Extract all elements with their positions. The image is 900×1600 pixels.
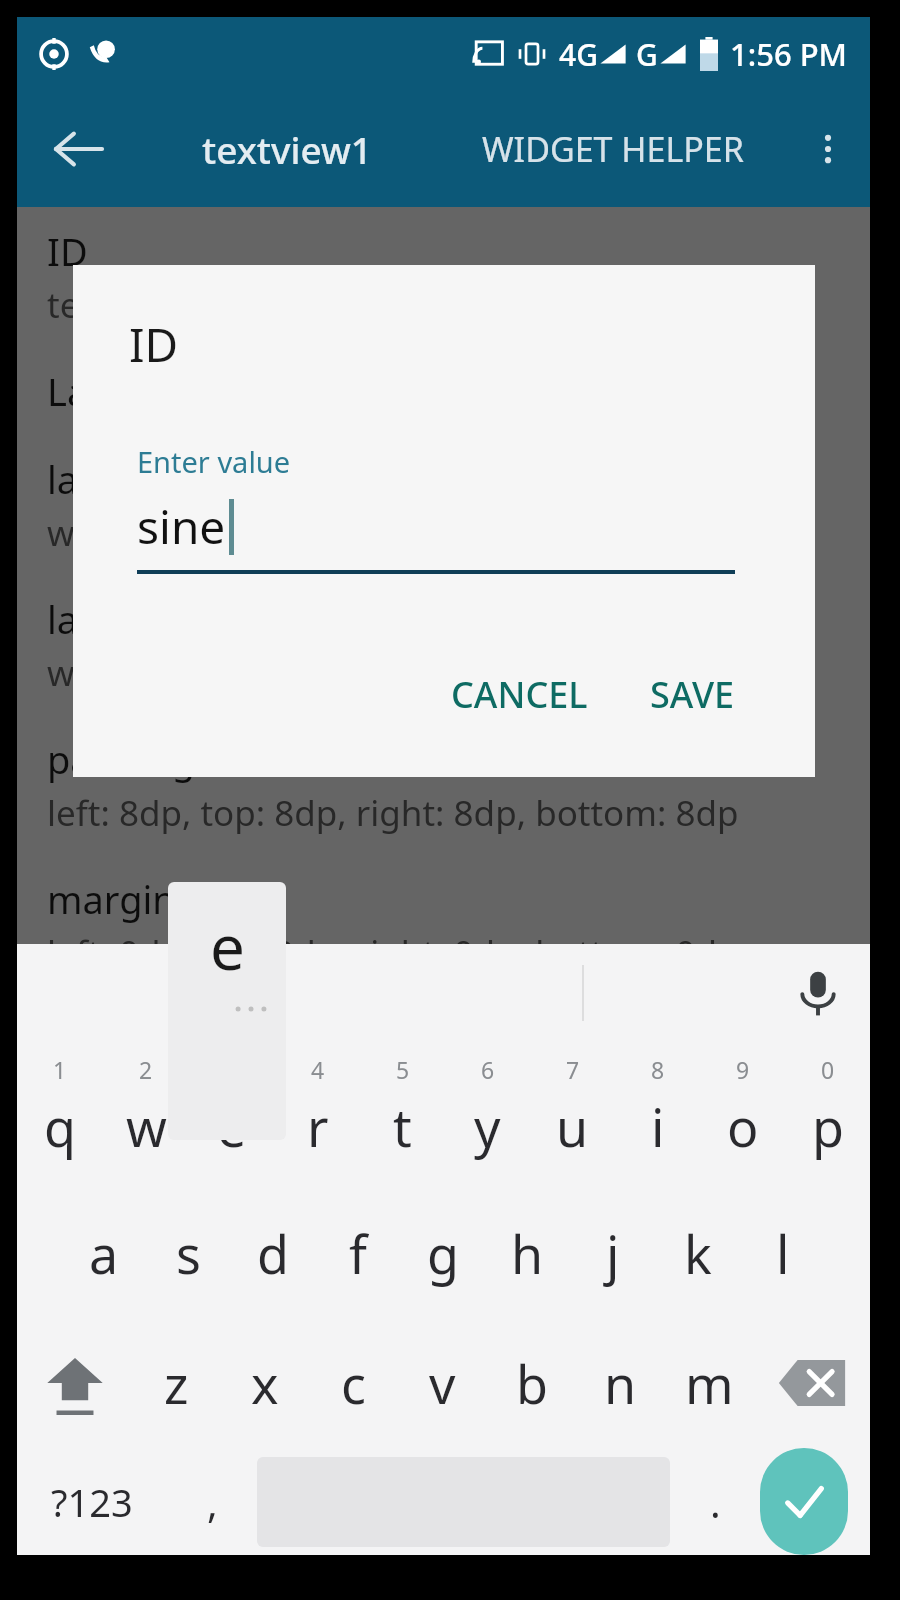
staticText: margin [47,873,176,925]
button[interactable]: f [315,1188,400,1318]
staticText: o [727,1091,759,1162]
staticText: s [176,1218,201,1289]
staticText: l [776,1218,790,1289]
button[interactable]: a [62,1188,146,1318]
button[interactable]: m [665,1318,754,1448]
staticText: SAVE [650,670,735,719]
staticText: k [684,1218,712,1289]
button[interactable]: Shift [17,1318,132,1448]
staticText: z [164,1348,189,1419]
staticText: WIDGET HELPER [482,126,744,172]
staticText: sine [137,495,226,558]
staticText: x [251,1348,279,1419]
staticText: r [307,1091,329,1162]
button[interactable]: d [230,1188,315,1318]
button[interactable]: z [132,1318,220,1448]
staticText: g [427,1218,459,1289]
button[interactable]: 5 [360,1042,445,1188]
button[interactable]: CANCEL [435,660,604,729]
staticText: y [474,1091,501,1162]
button[interactable]: Enter [760,1448,848,1555]
staticText: a [89,1218,119,1289]
staticText: left: 0dp, top: 0dp, right: 0dp, bottom:… [47,929,739,944]
staticText: j [606,1218,620,1289]
staticText: textview1 [202,124,372,174]
staticText: left: 8dp, top: 8dp, right: 8dp, bottom:… [47,789,739,837]
staticText: ID [47,225,88,277]
button[interactable]: x [220,1318,309,1448]
staticText: 4G [559,34,598,75]
button[interactable]: j [570,1188,655,1318]
staticText: 2 [139,1054,153,1085]
staticText: 0 [821,1054,835,1085]
staticText: q [44,1091,76,1162]
button[interactable]: b [487,1318,576,1448]
button[interactable]: . [670,1448,760,1555]
button[interactable]: 7 [530,1042,615,1188]
button[interactable]: g [400,1188,485,1318]
staticText: b [516,1348,548,1419]
staticText: w [126,1091,167,1162]
staticText: , [207,1475,218,1529]
staticText: Enter value [137,442,291,481]
staticText: f [349,1218,367,1289]
button[interactable]: 9 [700,1042,785,1188]
staticText: 4 [311,1054,325,1085]
button[interactable]: c [309,1318,398,1448]
button[interactable]: Back [47,117,111,181]
staticText: t [393,1091,412,1162]
staticText: p [812,1091,844,1162]
button[interactable]: Backspace [754,1318,870,1448]
button[interactable]: 0 [785,1042,870,1188]
button[interactable]: 4 [275,1042,360,1188]
staticText: padding [47,733,196,785]
button[interactable]: 1 [17,1042,103,1188]
button[interactable]: More options [800,121,856,177]
staticText: 9 [736,1054,750,1085]
button[interactable]: SAVE [634,660,751,729]
staticText: h [511,1218,544,1289]
button[interactable]: 2 [103,1042,189,1188]
staticText: u [556,1091,589,1162]
staticText: layout_height [47,593,290,645]
button[interactable]: s [146,1188,230,1318]
staticText: m [685,1348,734,1419]
staticText: e [217,1091,247,1162]
staticText: . [710,1475,721,1529]
staticText: n [604,1348,637,1419]
staticText: c [341,1348,366,1419]
staticText: e [210,904,245,988]
staticText: 1:56 PM [730,33,848,75]
button[interactable]: WIDGET HELPER [482,126,744,172]
staticText: ID [129,313,179,376]
button[interactable]: h [485,1188,570,1318]
staticText: i [651,1091,665,1162]
button[interactable]: 3 [189,1042,275,1188]
staticText: wrap_content [47,649,272,697]
staticText: 6 [481,1054,495,1085]
staticText: 7 [566,1054,580,1085]
staticText: layout_width [47,453,275,505]
button[interactable]: n [576,1318,665,1448]
staticText: 8 [651,1054,665,1085]
staticText: CANCEL [451,670,588,719]
button[interactable]: ?123 [17,1448,167,1555]
staticText: v [429,1348,456,1419]
staticText: d [257,1218,289,1289]
button[interactable]: Voice input [790,965,846,1021]
staticText: textview1 [47,281,204,329]
button[interactable]: 6 [445,1042,530,1188]
button[interactable]: l [740,1188,825,1318]
staticText: wrap_content [47,509,272,557]
button[interactable]: , [167,1448,257,1555]
staticText: 1 [53,1054,67,1085]
staticText: 5 [396,1054,410,1085]
button[interactable]: v [398,1318,487,1448]
staticText: G [636,34,658,75]
button[interactable]: 8 [615,1042,700,1188]
staticText: ?123 [51,1476,133,1528]
staticText: Layout [47,365,168,417]
button[interactable]: k [655,1188,740,1318]
